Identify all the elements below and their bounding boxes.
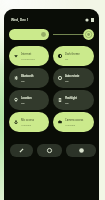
button[interactable]: Brightness <box>9 29 49 40</box>
button[interactable]: Camera access <box>53 112 94 132</box>
staticText: Dark theme <box>65 52 80 56</box>
staticText: Available <box>21 123 32 126</box>
staticText: Camera access <box>65 118 84 122</box>
staticText: Off <box>65 79 69 82</box>
button[interactable]: Power <box>66 144 96 157</box>
staticText: Available <box>65 123 76 126</box>
button[interactable]: Edit <box>10 144 33 157</box>
button[interactable]: Settings <box>37 144 62 157</box>
staticText: Mic access <box>21 118 35 122</box>
staticText: Off <box>21 79 25 82</box>
staticText: On <box>65 57 69 60</box>
staticText: Off <box>21 101 25 104</box>
button[interactable]: Dark theme <box>53 46 94 66</box>
staticText: Internet <box>21 52 32 56</box>
button[interactable]: Mic access <box>9 112 49 132</box>
staticText: Bluetooth <box>21 74 34 78</box>
button[interactable]: Location <box>9 90 49 110</box>
staticText: Auto rotate <box>65 74 80 78</box>
button[interactable]: Volume <box>53 29 94 40</box>
button[interactable]: Bluetooth <box>9 68 49 88</box>
button[interactable]: Flashlight <box>53 90 94 110</box>
button[interactable]: Auto rotate <box>53 68 94 88</box>
staticText: Flashlight <box>65 96 78 100</box>
staticText: Location <box>21 96 32 100</box>
staticText: Connections <box>21 57 35 60</box>
staticText: Off <box>65 101 69 104</box>
button[interactable]: Internet <box>9 46 49 66</box>
staticText: Wed, Dec 1 <box>11 17 29 22</box>
